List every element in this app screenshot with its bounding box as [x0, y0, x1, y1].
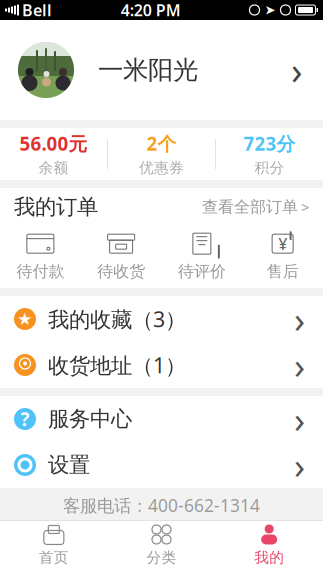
staticText: ★ [17, 309, 33, 329]
staticText: 分类 [146, 548, 176, 566]
staticText: › [291, 45, 303, 95]
staticText: 待评价 [178, 262, 226, 281]
staticText: 一米阳光 [98, 54, 198, 85]
staticText: 首页 [39, 548, 69, 566]
staticText: > [301, 197, 309, 217]
button[interactable]: 723分 [216, 128, 323, 180]
button[interactable]: ? [0, 396, 323, 442]
button[interactable]: 一米阳光 [0, 20, 323, 120]
button[interactable]: 我的 [215, 521, 323, 569]
staticText: ? [20, 407, 29, 431]
button[interactable]: 待评价 [161, 226, 242, 288]
staticText: 我的订单 [14, 194, 98, 220]
button[interactable]: 待付款 [0, 226, 81, 288]
staticText: 积分 [254, 159, 284, 177]
staticText: 余额 [38, 159, 68, 177]
staticText: 我的收藏（3） [48, 305, 186, 333]
staticText: 收货地址（1） [48, 351, 186, 379]
staticText: 待付款 [16, 262, 64, 281]
staticText: › [294, 441, 305, 489]
button[interactable]: ★ [0, 296, 323, 342]
staticText: ¥ [278, 233, 287, 254]
staticText: 待收货 [97, 262, 145, 281]
staticText: 2个 [146, 131, 176, 156]
staticText: › [294, 341, 305, 389]
button[interactable]: ¥ [242, 226, 323, 288]
staticText: ➤ [264, 2, 275, 17]
staticText: › [294, 295, 305, 343]
staticText: › [294, 395, 305, 443]
staticText: 56.00元 [19, 131, 87, 156]
staticText: 服务中心 [48, 406, 132, 432]
button[interactable]: 设置 [0, 442, 323, 488]
staticText: 售后 [267, 262, 299, 281]
button[interactable]: 首页 [0, 521, 108, 569]
button[interactable]: 待收货 [81, 226, 162, 288]
button[interactable]: 2个 [108, 128, 215, 180]
staticText: 查看全部订单 [202, 197, 298, 217]
button[interactable]: 56.00元 [0, 128, 107, 180]
staticText: 723分 [243, 131, 295, 156]
staticText: Bell [22, 0, 52, 21]
staticText: 优惠券 [139, 159, 184, 177]
staticText: 4:20 PM [121, 0, 181, 21]
staticText: 客服电话：400-662-1314 [63, 494, 260, 517]
staticText: 我的 [254, 548, 284, 566]
button[interactable]: 收货地址（1） [0, 342, 323, 388]
button[interactable]: 查看全部订单 [202, 191, 309, 223]
button[interactable]: 分类 [108, 521, 215, 569]
staticText: 设置 [48, 452, 90, 478]
